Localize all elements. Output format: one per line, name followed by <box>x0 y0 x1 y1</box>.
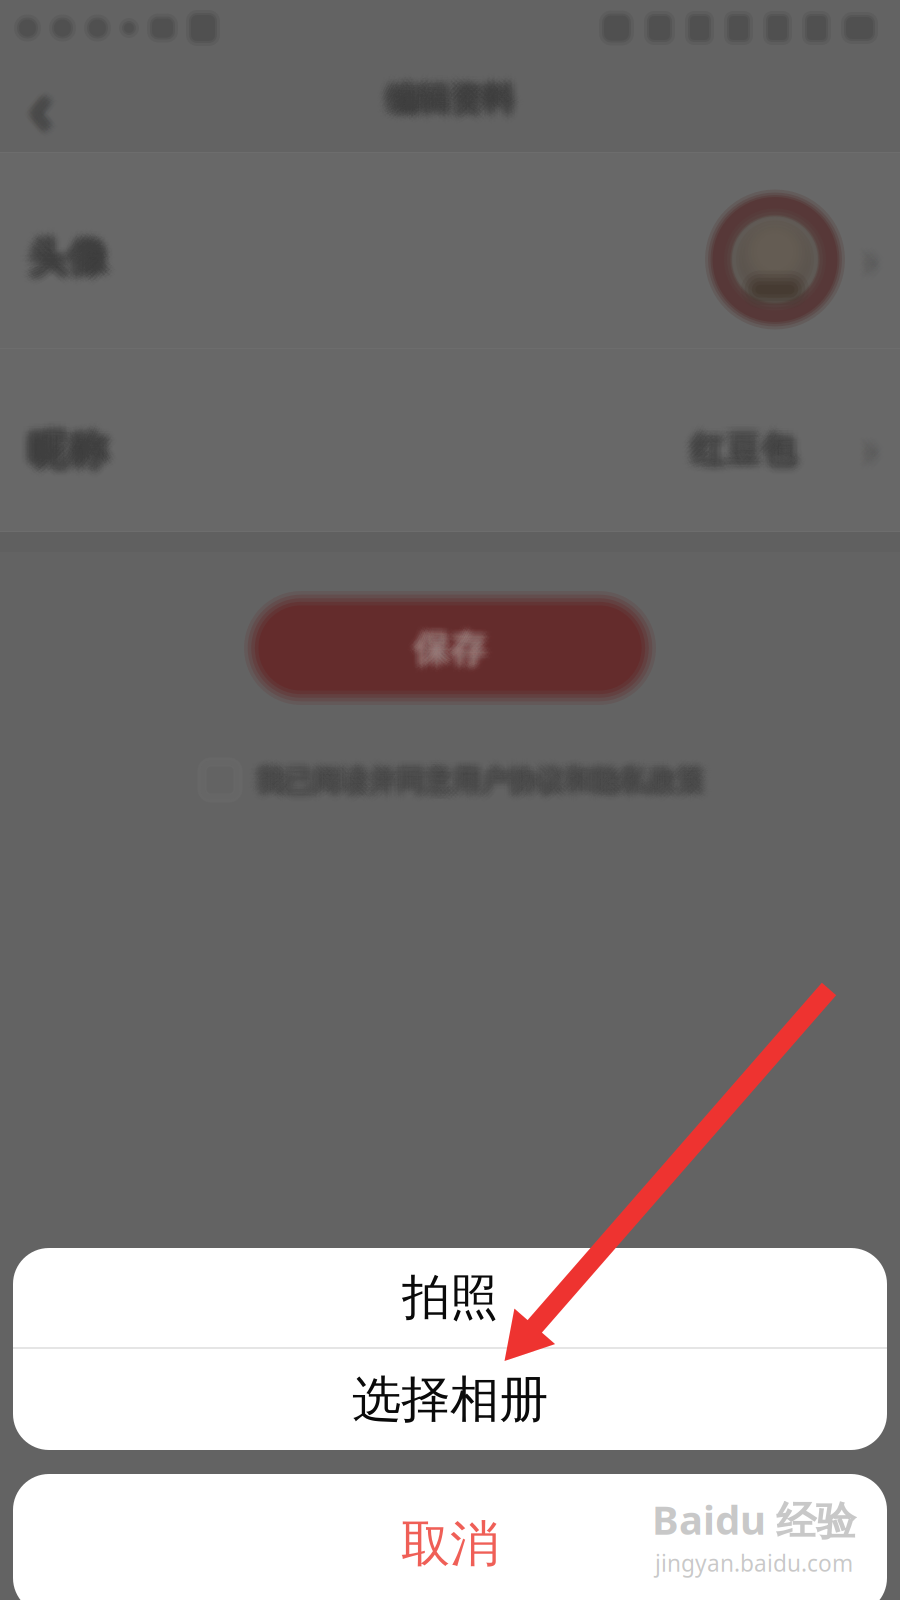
staticText: 保存 <box>403 615 475 659</box>
staticText: 编辑资料 <box>400 78 528 118</box>
staticText: 红豆包 <box>698 435 803 478</box>
staticText: ‹ <box>33 53 56 152</box>
staticText: › <box>867 233 882 297</box>
staticText: 红豆包 <box>700 438 805 480</box>
button[interactable]: 保存 <box>240 588 660 708</box>
staticText: 红豆包 <box>681 431 786 474</box>
staticText: 头像 <box>32 227 112 276</box>
staticText: 头像 <box>39 233 119 282</box>
button[interactable]: 拍照 <box>13 1248 887 1347</box>
staticText: ‹ <box>33 58 56 157</box>
button[interactable]: 头像 <box>0 153 900 348</box>
staticText: 头像 <box>18 221 98 270</box>
staticText: 我已阅读并同意用户协议和隐私政策 <box>260 774 708 809</box>
staticText: 头像 <box>40 219 120 268</box>
staticText: ‹ <box>27 54 50 154</box>
staticText: › <box>868 216 883 280</box>
staticText: ‹ <box>41 50 64 149</box>
staticText: ‹ <box>20 66 43 166</box>
staticText: › <box>864 226 879 289</box>
staticText: 红豆包 <box>688 440 793 483</box>
staticText: › <box>862 228 877 292</box>
staticText: 头像 <box>42 232 122 281</box>
staticText: 昵称 <box>19 431 99 480</box>
staticText: 昵称 <box>38 413 118 462</box>
staticText: 昵称 <box>15 412 95 461</box>
staticText: 红豆包 <box>695 418 800 460</box>
staticText: 昵称 <box>17 414 97 463</box>
staticText: 编辑资料 <box>396 92 524 131</box>
staticText: 我已阅读并同意用户协议和隐私政策 <box>266 756 714 791</box>
staticText: › <box>867 408 882 472</box>
button[interactable]: 选择相册 <box>13 1349 887 1450</box>
staticText: ‹ <box>35 61 58 160</box>
staticText: 昵称 <box>38 423 118 472</box>
staticText: 头像 <box>23 236 103 285</box>
staticText: 昵称 <box>22 419 102 468</box>
staticText: 我已阅读并同意用户协议和隐私政策 <box>257 755 705 790</box>
button[interactable]: 取消 <box>13 1474 887 1600</box>
staticText: ‹ <box>31 57 54 156</box>
staticText: 我已阅读并同意用户协议和隐私政策 <box>250 769 698 803</box>
staticText: 编辑资料 <box>387 85 515 124</box>
button[interactable]: 昵称 <box>0 349 900 531</box>
staticText: 昵称 <box>25 417 105 466</box>
staticText: 保存 <box>422 617 494 661</box>
staticText: 保存 <box>412 628 484 672</box>
staticText: 头像 <box>15 219 95 268</box>
staticText: 编辑资料 <box>376 82 504 121</box>
staticText: 头像 <box>35 229 115 278</box>
staticText: 红豆包 <box>696 431 801 474</box>
staticText: ‹ <box>19 46 42 145</box>
staticText: › <box>860 227 875 291</box>
staticText: 保存 <box>414 620 486 665</box>
staticText: › <box>859 235 874 299</box>
staticText: 红豆包 <box>696 436 801 479</box>
staticText: 头像 <box>23 221 103 270</box>
staticText: 头像 <box>19 243 99 292</box>
staticText: 编辑资料 <box>390 73 518 113</box>
staticText: 保存 <box>412 637 484 681</box>
staticText: 编辑资料 <box>373 86 501 125</box>
staticText: 红豆包 <box>681 436 786 479</box>
staticText: 昵称 <box>19 416 99 465</box>
staticText: 昵称 <box>23 423 103 472</box>
staticText: 编辑资料 <box>397 85 525 124</box>
staticText: 红豆包 <box>691 436 796 479</box>
staticText: 编辑资料 <box>397 90 525 129</box>
staticText: ‹ <box>33 66 56 166</box>
staticText: 保存 <box>408 635 480 679</box>
staticText: ‹ <box>30 64 53 163</box>
staticText: › <box>860 416 875 480</box>
staticText: 编辑资料 <box>390 88 518 128</box>
staticText: 红豆包 <box>693 420 798 463</box>
staticText: › <box>858 228 873 292</box>
staticText: › <box>864 216 879 280</box>
staticText: 编辑资料 <box>382 85 510 124</box>
staticText: 我已阅读并同意用户协议和隐私政策 <box>259 771 707 806</box>
staticText: › <box>860 237 875 300</box>
staticText: 我已阅读并同意用户协议和隐私政策 <box>263 767 711 801</box>
staticText: › <box>867 238 882 301</box>
staticText: 保存 <box>424 623 496 667</box>
staticText: 我已阅读并同意用户协议和隐私政策 <box>253 755 701 790</box>
staticText: 红豆包 <box>686 426 791 469</box>
staticText: 红豆包 <box>692 429 797 472</box>
staticText: 我已阅读并同意用户协议和隐私政策 <box>252 762 700 796</box>
staticText: 编辑资料 <box>400 68 528 108</box>
staticText: 红豆包 <box>692 434 797 477</box>
staticText: 编辑资料 <box>373 66 501 105</box>
staticText: 编辑资料 <box>377 90 505 129</box>
button[interactable]: Back <box>0 56 80 152</box>
staticText: ‹ <box>35 48 58 147</box>
